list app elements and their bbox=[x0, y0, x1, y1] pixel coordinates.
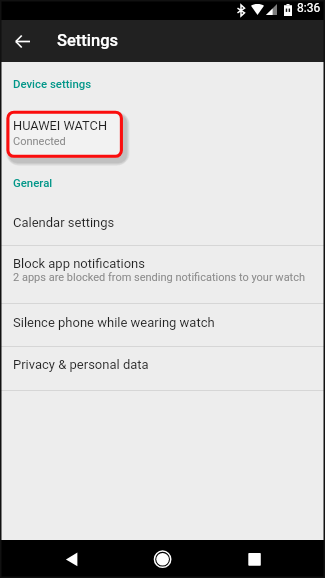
staticText: Silence phone while wearing watch bbox=[13, 315, 215, 330]
button[interactable]: Silence phone while wearing watch bbox=[0, 304, 325, 347]
staticText: Calendar settings bbox=[13, 215, 115, 230]
staticText: Block app notifications bbox=[13, 256, 145, 271]
staticText: HUAWEI WATCH bbox=[13, 118, 108, 133]
button[interactable]: Block app notifications bbox=[0, 245, 325, 304]
staticText: Connected bbox=[13, 135, 66, 148]
staticText: Privacy & personal data bbox=[13, 357, 149, 372]
staticText: 8:36 bbox=[297, 1, 321, 15]
button[interactable]: Recents bbox=[233, 540, 277, 578]
button[interactable]: Back bbox=[50, 540, 94, 578]
staticText: 2 apps are blocked from sending notifica… bbox=[13, 271, 306, 284]
button[interactable]: Calendar settings bbox=[0, 200, 325, 245]
button[interactable]: Privacy & personal data bbox=[0, 347, 325, 390]
staticText: General bbox=[13, 176, 53, 189]
button[interactable]: Back bbox=[8, 27, 36, 55]
button[interactable]: Home bbox=[141, 540, 185, 578]
button[interactable]: HUAWEI WATCH bbox=[0, 105, 325, 157]
staticText: Device settings bbox=[13, 77, 92, 90]
staticText: Settings bbox=[57, 31, 119, 50]
